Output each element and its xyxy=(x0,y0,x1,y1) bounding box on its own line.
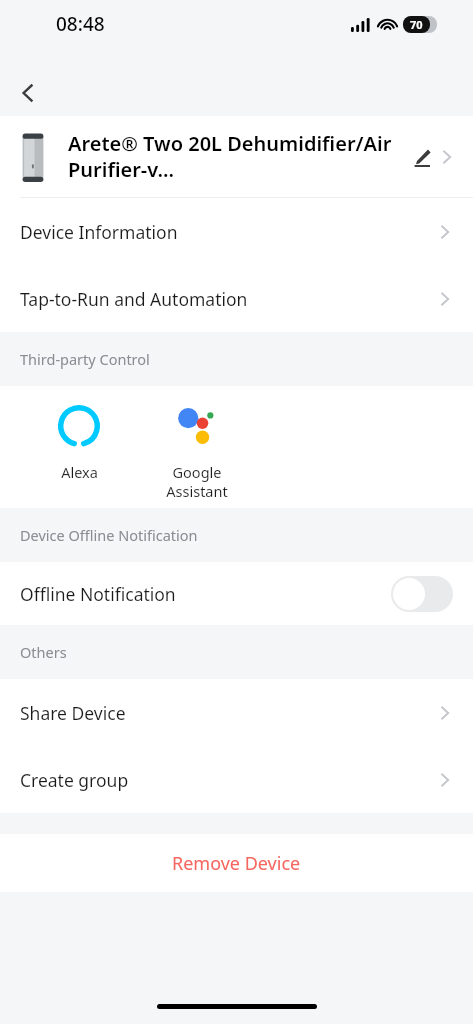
button[interactable]: Alexa xyxy=(20,386,138,482)
staticText: Share Device xyxy=(20,701,126,725)
staticText: Tap-to-Run and Automation xyxy=(20,287,248,311)
staticText: Arete® Two 20L Dehumidifier/Air Purifier… xyxy=(68,130,399,183)
staticText: Offline Notification xyxy=(20,582,176,606)
staticText: 08:48 xyxy=(56,11,105,37)
staticText: Others xyxy=(20,642,67,662)
staticText: Alexa xyxy=(61,462,98,482)
button[interactable]: Remove Device xyxy=(0,834,473,892)
button[interactable]: Edit device name xyxy=(407,142,437,172)
staticText: Device Offline Notification xyxy=(20,525,198,545)
staticText: 70 xyxy=(410,17,423,32)
button[interactable]: Google Assistant xyxy=(138,386,256,501)
button[interactable]: Back xyxy=(0,70,56,116)
button[interactable]: Share Device xyxy=(0,679,473,746)
staticText: Third-party Control xyxy=(20,349,150,369)
staticText: Google Assistant xyxy=(166,462,228,501)
staticText: Remove Device xyxy=(172,851,301,876)
button[interactable]: Offline Notification xyxy=(0,562,473,625)
button[interactable]: Offline Notification toggle, off xyxy=(391,576,453,612)
button[interactable]: Device Information xyxy=(0,198,473,265)
button[interactable]: Tap-to-Run and Automation xyxy=(0,265,473,332)
staticText: Create group xyxy=(20,768,129,792)
button[interactable]: Create group xyxy=(0,746,473,813)
button[interactable]: Arete® Two 20L Dehumidifier/Air Purifier… xyxy=(0,130,473,183)
staticText: Device Information xyxy=(20,220,178,244)
